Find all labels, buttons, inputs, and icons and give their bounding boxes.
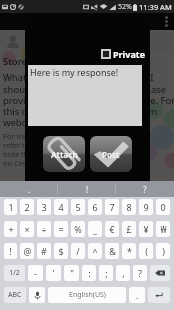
staticText: For instructions on how to please refer … [3, 131, 127, 169]
button[interactable]: £ [122, 221, 136, 237]
button[interactable]: = [54, 221, 68, 237]
button[interactable]: € [105, 221, 119, 237]
button[interactable]: 4 [54, 199, 68, 215]
button[interactable]: . [0, 181, 58, 197]
staticText: 1/2 [9, 268, 20, 278]
button[interactable]: 7 [105, 199, 119, 215]
staticText: " [70, 267, 74, 279]
button[interactable]: @ [20, 243, 34, 259]
button[interactable]: ' [46, 265, 61, 281]
button[interactable]: Enter [148, 287, 170, 303]
staticText: 9 [143, 201, 149, 213]
button[interactable]: . [129, 287, 145, 303]
button[interactable]: & [105, 243, 119, 259]
button[interactable]: * [122, 243, 136, 259]
staticText: ^ [92, 245, 98, 257]
staticText: + [8, 223, 14, 235]
staticText: Here is my response! [30, 66, 119, 78]
button[interactable]: 0 [156, 199, 170, 215]
staticText: × [24, 223, 30, 235]
button[interactable]: × [20, 221, 34, 237]
button[interactable]: Backspace [150, 265, 170, 281]
button[interactable]: 5 [71, 199, 85, 215]
button[interactable]: ABC [4, 287, 26, 303]
button[interactable]: , [116, 265, 130, 281]
staticText: ? [143, 184, 147, 195]
staticText: & [109, 245, 116, 257]
staticText: Attach [51, 149, 78, 160]
button[interactable]: ? [133, 265, 147, 281]
button[interactable]: / [71, 243, 85, 259]
staticText: , [122, 267, 125, 279]
button[interactable]: ! [4, 243, 17, 259]
button[interactable]: 8 [122, 199, 136, 215]
button[interactable]: _ [88, 221, 102, 237]
button[interactable]: : [82, 265, 96, 281]
staticText: 5 [75, 201, 81, 213]
staticText: Post [102, 149, 120, 160]
button[interactable]: ( [139, 243, 153, 259]
staticText: 52% [118, 2, 132, 12]
staticText: ) [162, 245, 165, 257]
staticText: Store Preferences [3, 55, 84, 68]
staticText: $ [58, 245, 64, 257]
staticText: = [58, 223, 64, 235]
button[interactable]: 1/2 [4, 265, 25, 281]
staticText: ; [105, 267, 108, 279]
staticText: . [136, 289, 139, 301]
staticText: 11:39 AM [139, 2, 172, 12]
staticText: ABC [8, 290, 22, 300]
staticText: ! [9, 245, 12, 257]
staticText: What kind of information should I should… [3, 71, 174, 129]
staticText: ₩ [160, 223, 167, 235]
button[interactable]: Post [90, 136, 132, 172]
button[interactable]: 3 [37, 199, 51, 215]
other: Backspace [155, 270, 165, 276]
button[interactable]: ^ [88, 243, 102, 259]
staticText: _ [93, 223, 97, 235]
staticText: ? [138, 267, 142, 279]
staticText: / [76, 245, 80, 257]
button[interactable]: $ [54, 243, 68, 259]
staticText: € [109, 223, 115, 235]
staticText: ÷ [41, 223, 47, 235]
staticText: : [88, 267, 91, 279]
staticText: * [127, 245, 132, 257]
button[interactable]: 2 [20, 199, 34, 215]
staticText: 0 [160, 201, 166, 213]
button[interactable]: Voice input [29, 287, 45, 303]
staticText: 4 [58, 201, 64, 213]
staticText: % [74, 223, 82, 235]
staticText: # [41, 245, 47, 257]
button[interactable]: 6 [88, 199, 102, 215]
staticText: 6 [92, 201, 98, 213]
button[interactable]: English(US) [48, 287, 126, 303]
staticText: 1 [8, 201, 14, 213]
button[interactable]: ) [156, 243, 170, 259]
button[interactable]: ₩ [156, 221, 170, 237]
staticText: ( [145, 245, 148, 257]
button[interactable]: " [64, 265, 79, 281]
button[interactable]: 9 [139, 199, 153, 215]
button[interactable]: Attach [43, 136, 85, 172]
staticText: English(US) [69, 290, 106, 300]
button[interactable]: Here is my response! [28, 65, 142, 126]
button[interactable]: ! [58, 181, 116, 197]
button[interactable]: ¥ [139, 221, 153, 237]
button[interactable]: 1 [4, 199, 17, 215]
button[interactable]: - [28, 265, 43, 281]
button[interactable]: ; [99, 265, 113, 281]
staticText: 7 [109, 201, 115, 213]
button[interactable]: ÷ [37, 221, 51, 237]
button[interactable]: # [37, 243, 51, 259]
button[interactable]: + [4, 221, 17, 237]
staticText: @ [23, 245, 32, 257]
other: More options [165, 16, 168, 27]
staticText: Private [113, 48, 146, 60]
staticText: 8 [126, 201, 132, 213]
staticText: ! [86, 184, 89, 195]
button[interactable]: % [71, 221, 85, 237]
staticText: . [28, 184, 31, 195]
button[interactable]: ? [116, 181, 174, 197]
